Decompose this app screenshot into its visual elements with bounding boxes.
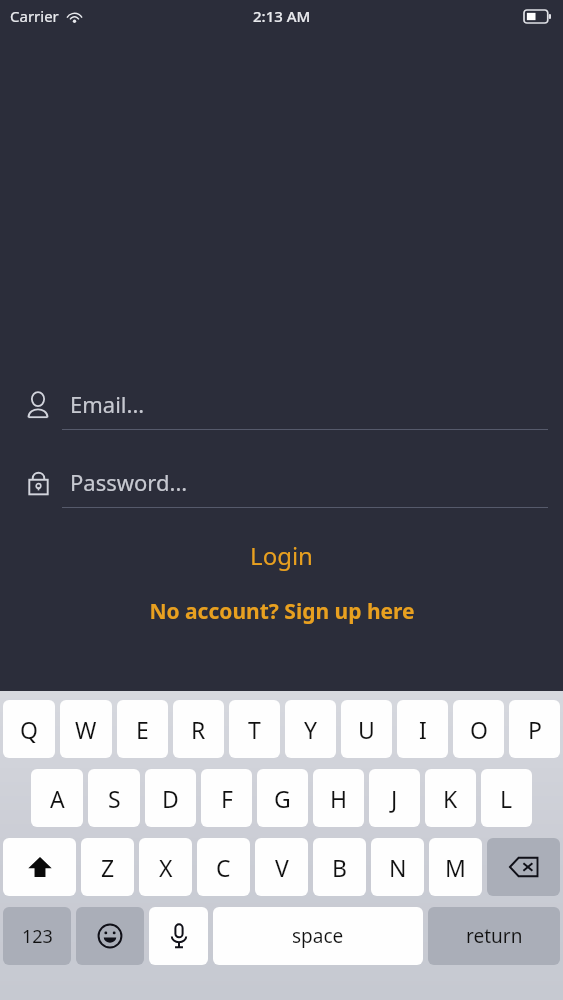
staticText: M <box>445 852 466 883</box>
button[interactable]: H <box>313 769 364 827</box>
button[interactable]: I <box>397 700 448 758</box>
staticText: G <box>274 783 291 814</box>
button[interactable]: A <box>31 769 83 827</box>
button[interactable]: N <box>371 838 424 896</box>
staticText: H <box>330 783 348 814</box>
staticText: Login <box>250 539 313 572</box>
staticText: J <box>391 783 398 814</box>
staticText: Y <box>304 714 318 745</box>
staticText: P <box>528 714 542 745</box>
staticText: U <box>358 714 375 745</box>
button[interactable]: Z <box>81 838 134 896</box>
button[interactable]: Dictation <box>149 907 208 965</box>
staticText: I <box>419 714 427 745</box>
button[interactable]: L <box>481 769 532 827</box>
button[interactable]: S <box>88 769 140 827</box>
button[interactable]: V <box>255 838 308 896</box>
staticText: Q <box>20 714 38 745</box>
button[interactable]: M <box>429 838 482 896</box>
button[interactable]: T <box>229 700 280 758</box>
button[interactable]: Q <box>3 700 55 758</box>
button[interactable]: X <box>139 838 192 896</box>
button[interactable]: Shift <box>3 838 76 896</box>
button[interactable]: Backspace <box>487 838 560 896</box>
button[interactable]: E <box>117 700 168 758</box>
staticText: L <box>500 783 513 814</box>
button[interactable]: Email... <box>0 387 563 430</box>
button[interactable]: Login <box>0 535 563 575</box>
staticText: F <box>221 783 233 814</box>
staticText: S <box>108 783 121 814</box>
button[interactable]: K <box>425 769 476 827</box>
button[interactable]: 123 <box>3 907 71 965</box>
button[interactable]: U <box>341 700 392 758</box>
button[interactable]: G <box>257 769 308 827</box>
staticText: N <box>389 852 407 883</box>
button[interactable]: O <box>453 700 504 758</box>
button[interactable]: P <box>509 700 560 758</box>
staticText: Password... <box>70 467 188 497</box>
button[interactable]: W <box>60 700 112 758</box>
staticText: T <box>248 714 261 745</box>
staticText: space <box>292 923 344 949</box>
staticText: No account? Sign up here <box>149 597 415 626</box>
button[interactable]: Emoji <box>76 907 144 965</box>
staticText: return <box>466 923 523 949</box>
staticText: R <box>191 714 206 745</box>
button[interactable]: D <box>145 769 196 827</box>
staticText: W <box>75 714 97 745</box>
button[interactable]: R <box>173 700 224 758</box>
staticText: C <box>216 852 231 883</box>
staticText: 2:13 AM <box>253 6 311 26</box>
staticText: B <box>332 852 347 883</box>
staticText: Carrier <box>10 6 59 26</box>
button[interactable]: space <box>213 907 423 965</box>
button[interactable]: C <box>197 838 250 896</box>
staticText: Email... <box>70 389 145 419</box>
button[interactable]: No account? Sign up here <box>0 594 563 628</box>
staticText: V <box>275 852 289 883</box>
staticText: X <box>159 852 173 883</box>
button[interactable]: Y <box>285 700 336 758</box>
button[interactable]: F <box>201 769 252 827</box>
staticText: 123 <box>22 924 53 949</box>
button[interactable]: J <box>369 769 420 827</box>
staticText: E <box>136 714 149 745</box>
button[interactable]: return <box>428 907 560 965</box>
staticText: Z <box>101 852 115 883</box>
staticText: K <box>443 783 458 814</box>
staticText: A <box>50 783 65 814</box>
staticText: O <box>470 714 488 745</box>
button[interactable]: B <box>313 838 366 896</box>
button[interactable]: Password... <box>0 465 563 508</box>
staticText: D <box>162 783 179 814</box>
